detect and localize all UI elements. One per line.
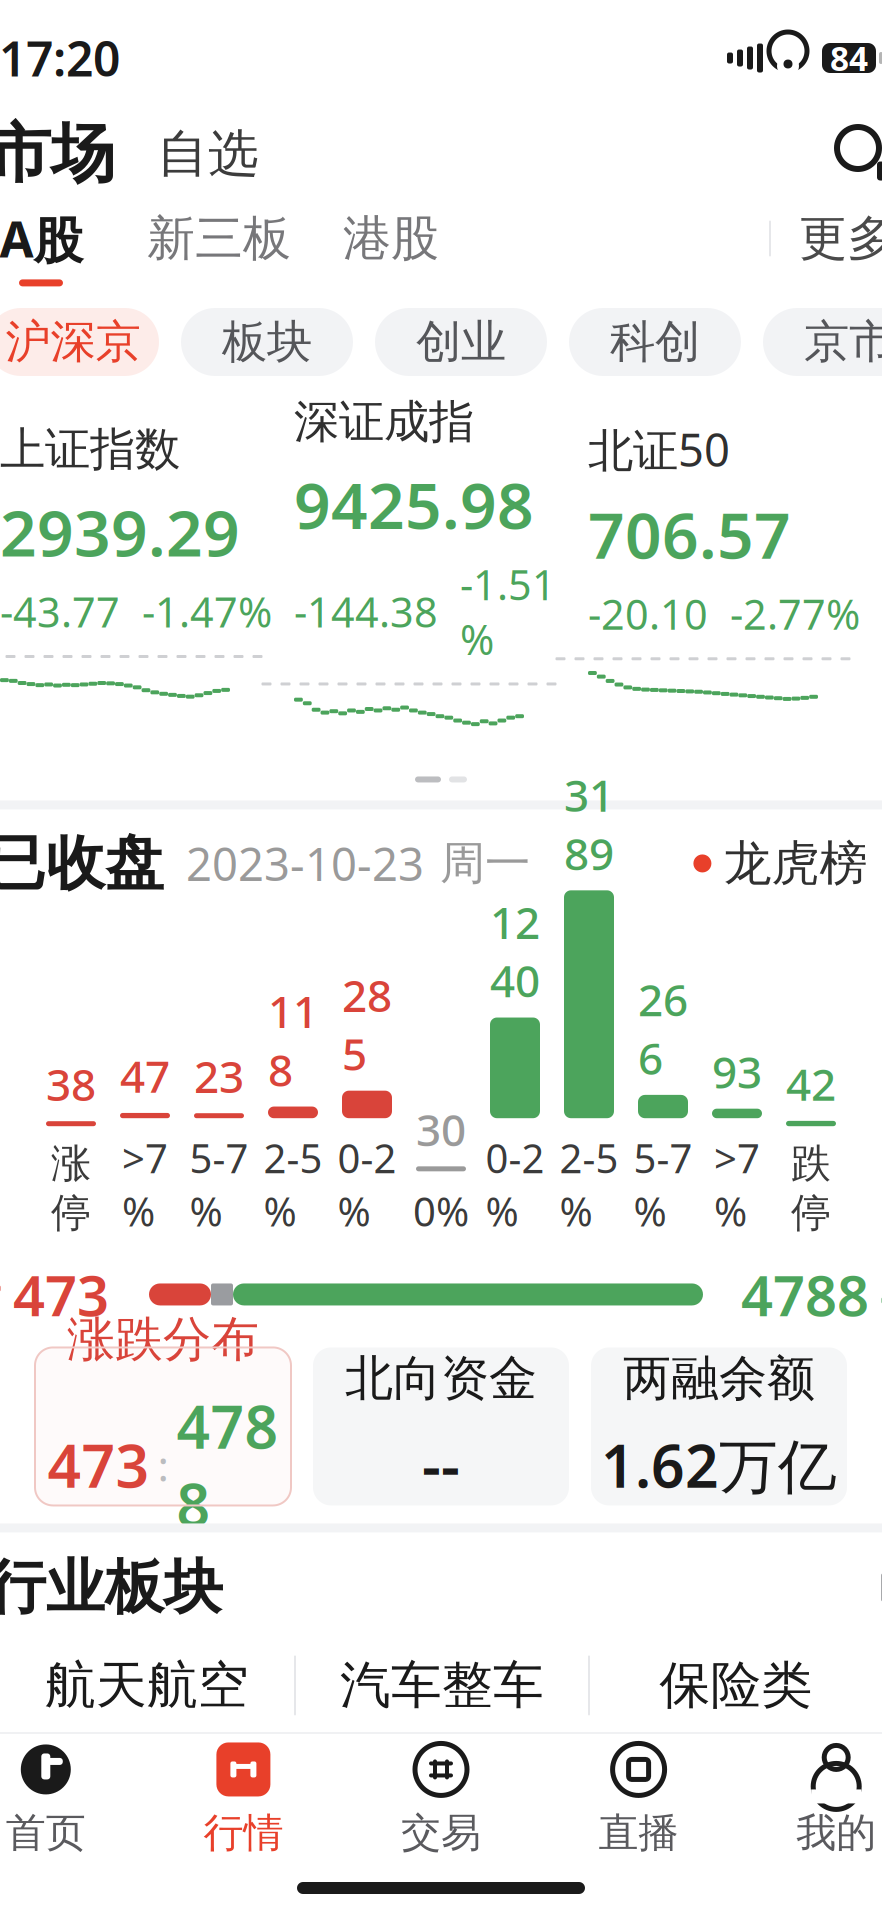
staticText: 5-7%: [189, 1131, 248, 1237]
button[interactable]: 创业: [375, 308, 547, 376]
staticText: 473: [47, 1426, 149, 1504]
staticText: A股: [0, 206, 82, 271]
staticText: 周一: [440, 836, 530, 891]
button[interactable]: 北证50: [588, 419, 882, 749]
button[interactable]: 京市: [763, 308, 882, 376]
staticText: -20.10: [588, 586, 708, 641]
staticText: 已收盘: [0, 827, 164, 899]
staticText: 北证50: [588, 419, 730, 479]
staticText: 84: [830, 36, 868, 80]
button[interactable]: A股: [0, 206, 95, 286]
staticText: 跌停: [791, 1139, 831, 1237]
button[interactable]: 交易: [342, 1734, 540, 1864]
button[interactable]: 新三板: [95, 209, 291, 283]
button[interactable]: 自选: [115, 123, 259, 185]
staticText: 285: [342, 966, 392, 1083]
staticText: 我的: [796, 1808, 876, 1857]
staticText: 118: [268, 982, 318, 1099]
staticText: 2939.29: [0, 489, 240, 574]
staticText: 2-5%: [559, 1131, 618, 1237]
staticText: 0%: [413, 1184, 469, 1237]
staticText: 市场: [0, 115, 115, 193]
button[interactable]: 行情: [145, 1734, 342, 1864]
staticText: 涨停: [51, 1139, 91, 1237]
staticText: 更多: [799, 209, 882, 268]
button[interactable]: 沪深京: [0, 308, 159, 376]
button[interactable]: 深证成指: [294, 394, 588, 774]
button[interactable]: 港股: [291, 209, 439, 283]
button[interactable]: 科创: [569, 308, 741, 376]
staticText: 自选: [157, 123, 259, 185]
staticText: 0-2%: [337, 1131, 396, 1237]
button[interactable]: 直播: [540, 1734, 737, 1864]
staticText: 3189: [564, 765, 614, 882]
staticText: -2.77%: [730, 586, 860, 641]
staticText: 港股: [343, 209, 439, 268]
staticText: >7%: [122, 1131, 168, 1237]
staticText: 京市: [804, 314, 882, 370]
staticText: 47: [120, 1046, 170, 1105]
staticText: 0-2%: [485, 1131, 544, 1237]
staticText: 首页: [6, 1808, 86, 1857]
staticText: 汽车整车: [340, 1654, 544, 1716]
staticText: 30: [416, 1100, 466, 1158]
staticText: 科创: [610, 314, 700, 370]
staticText: 沪深京: [5, 314, 140, 370]
button[interactable]: 涨跌分布: [35, 1347, 291, 1505]
staticText: 新三板: [147, 209, 291, 268]
staticText: 9425.98: [294, 462, 534, 547]
staticText: 473: [13, 1257, 109, 1332]
staticText: 深证成指: [294, 394, 474, 450]
staticText: 行业板块: [0, 1551, 223, 1623]
staticText: 上证指数: [0, 421, 180, 477]
staticText: 创业: [416, 314, 506, 370]
staticText: 42: [786, 1054, 836, 1113]
button[interactable]: 保险类: [590, 1648, 882, 1722]
staticText: -144.38: [294, 584, 438, 639]
staticText: 23: [194, 1047, 244, 1105]
staticText: 93: [712, 1042, 762, 1101]
staticText: 北向资金: [345, 1349, 537, 1408]
button[interactable]: 搜索: [833, 123, 882, 185]
staticText: -43.77: [0, 584, 120, 639]
staticText: -1.47%: [142, 584, 272, 639]
button[interactable]: 首页: [0, 1734, 145, 1864]
button[interactable]: 航天航空: [0, 1648, 294, 1722]
button[interactable]: 板块: [181, 308, 353, 376]
staticText: 行情: [203, 1808, 283, 1857]
staticText: 保险类: [659, 1654, 812, 1716]
staticText: --: [422, 1426, 460, 1504]
button[interactable]: 更多: [771, 209, 882, 283]
staticText: 板块: [222, 314, 312, 370]
staticText: 5-7%: [633, 1131, 692, 1237]
button[interactable]: 龙虎榜: [693, 834, 882, 893]
staticText: -1.51%: [460, 557, 556, 666]
staticText: 4788: [741, 1257, 869, 1332]
staticText: 266: [638, 970, 688, 1087]
staticText: 1240: [490, 893, 540, 1010]
button[interactable]: 两融余额: [591, 1347, 847, 1505]
staticText: 2023-10-23: [186, 833, 424, 893]
staticText: 706.57: [588, 491, 791, 576]
staticText: >7%: [714, 1131, 760, 1237]
button[interactable]: 市场: [0, 115, 115, 193]
staticText: 直播: [599, 1808, 679, 1857]
staticText: 两融余额: [623, 1349, 815, 1408]
button[interactable]: 行业板块: [0, 1532, 882, 1642]
staticText: 涨跌分布: [67, 1310, 259, 1369]
staticText: 航天航空: [45, 1654, 249, 1716]
staticText: 龙虎榜: [723, 834, 867, 893]
button[interactable]: 汽车整车: [296, 1648, 588, 1722]
staticText: :: [157, 1437, 168, 1493]
button[interactable]: 上证指数: [0, 421, 294, 747]
staticText: 1.62万亿: [601, 1426, 837, 1504]
staticText: 2-5%: [263, 1131, 322, 1237]
staticText: 38: [46, 1055, 96, 1113]
button[interactable]: 北向资金: [313, 1347, 569, 1505]
staticText: 4788: [176, 1387, 278, 1543]
staticText: 17:20: [0, 26, 120, 90]
staticText: 交易: [401, 1808, 481, 1857]
button[interactable]: 我的: [737, 1734, 882, 1864]
